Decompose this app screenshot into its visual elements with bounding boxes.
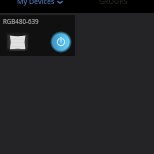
- staticText: GROUPS: [99, 0, 128, 7]
- button[interactable]: RGB480-639: [0, 15, 75, 56]
- button[interactable]: GROUPS: [77, 0, 154, 13]
- staticText: My Devices: [17, 0, 55, 7]
- button[interactable]: My Devices: [0, 0, 77, 13]
- staticText: RGB480-639: [3, 17, 39, 25]
- button[interactable]: Power toggle: [50, 31, 72, 53]
